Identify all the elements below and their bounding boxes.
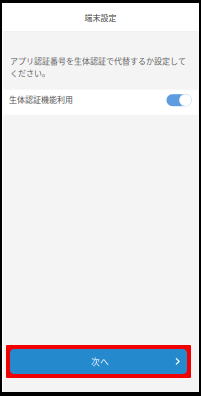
staticText: 端末設定 bbox=[84, 12, 116, 23]
staticText: 次へ bbox=[91, 355, 109, 368]
staticText: アプリ認証番号を生体認証で代替するか設定してください。 bbox=[10, 55, 186, 79]
staticText: 生体認証機能利用 bbox=[9, 93, 73, 105]
button[interactable]: 次へ bbox=[2, 345, 191, 378]
